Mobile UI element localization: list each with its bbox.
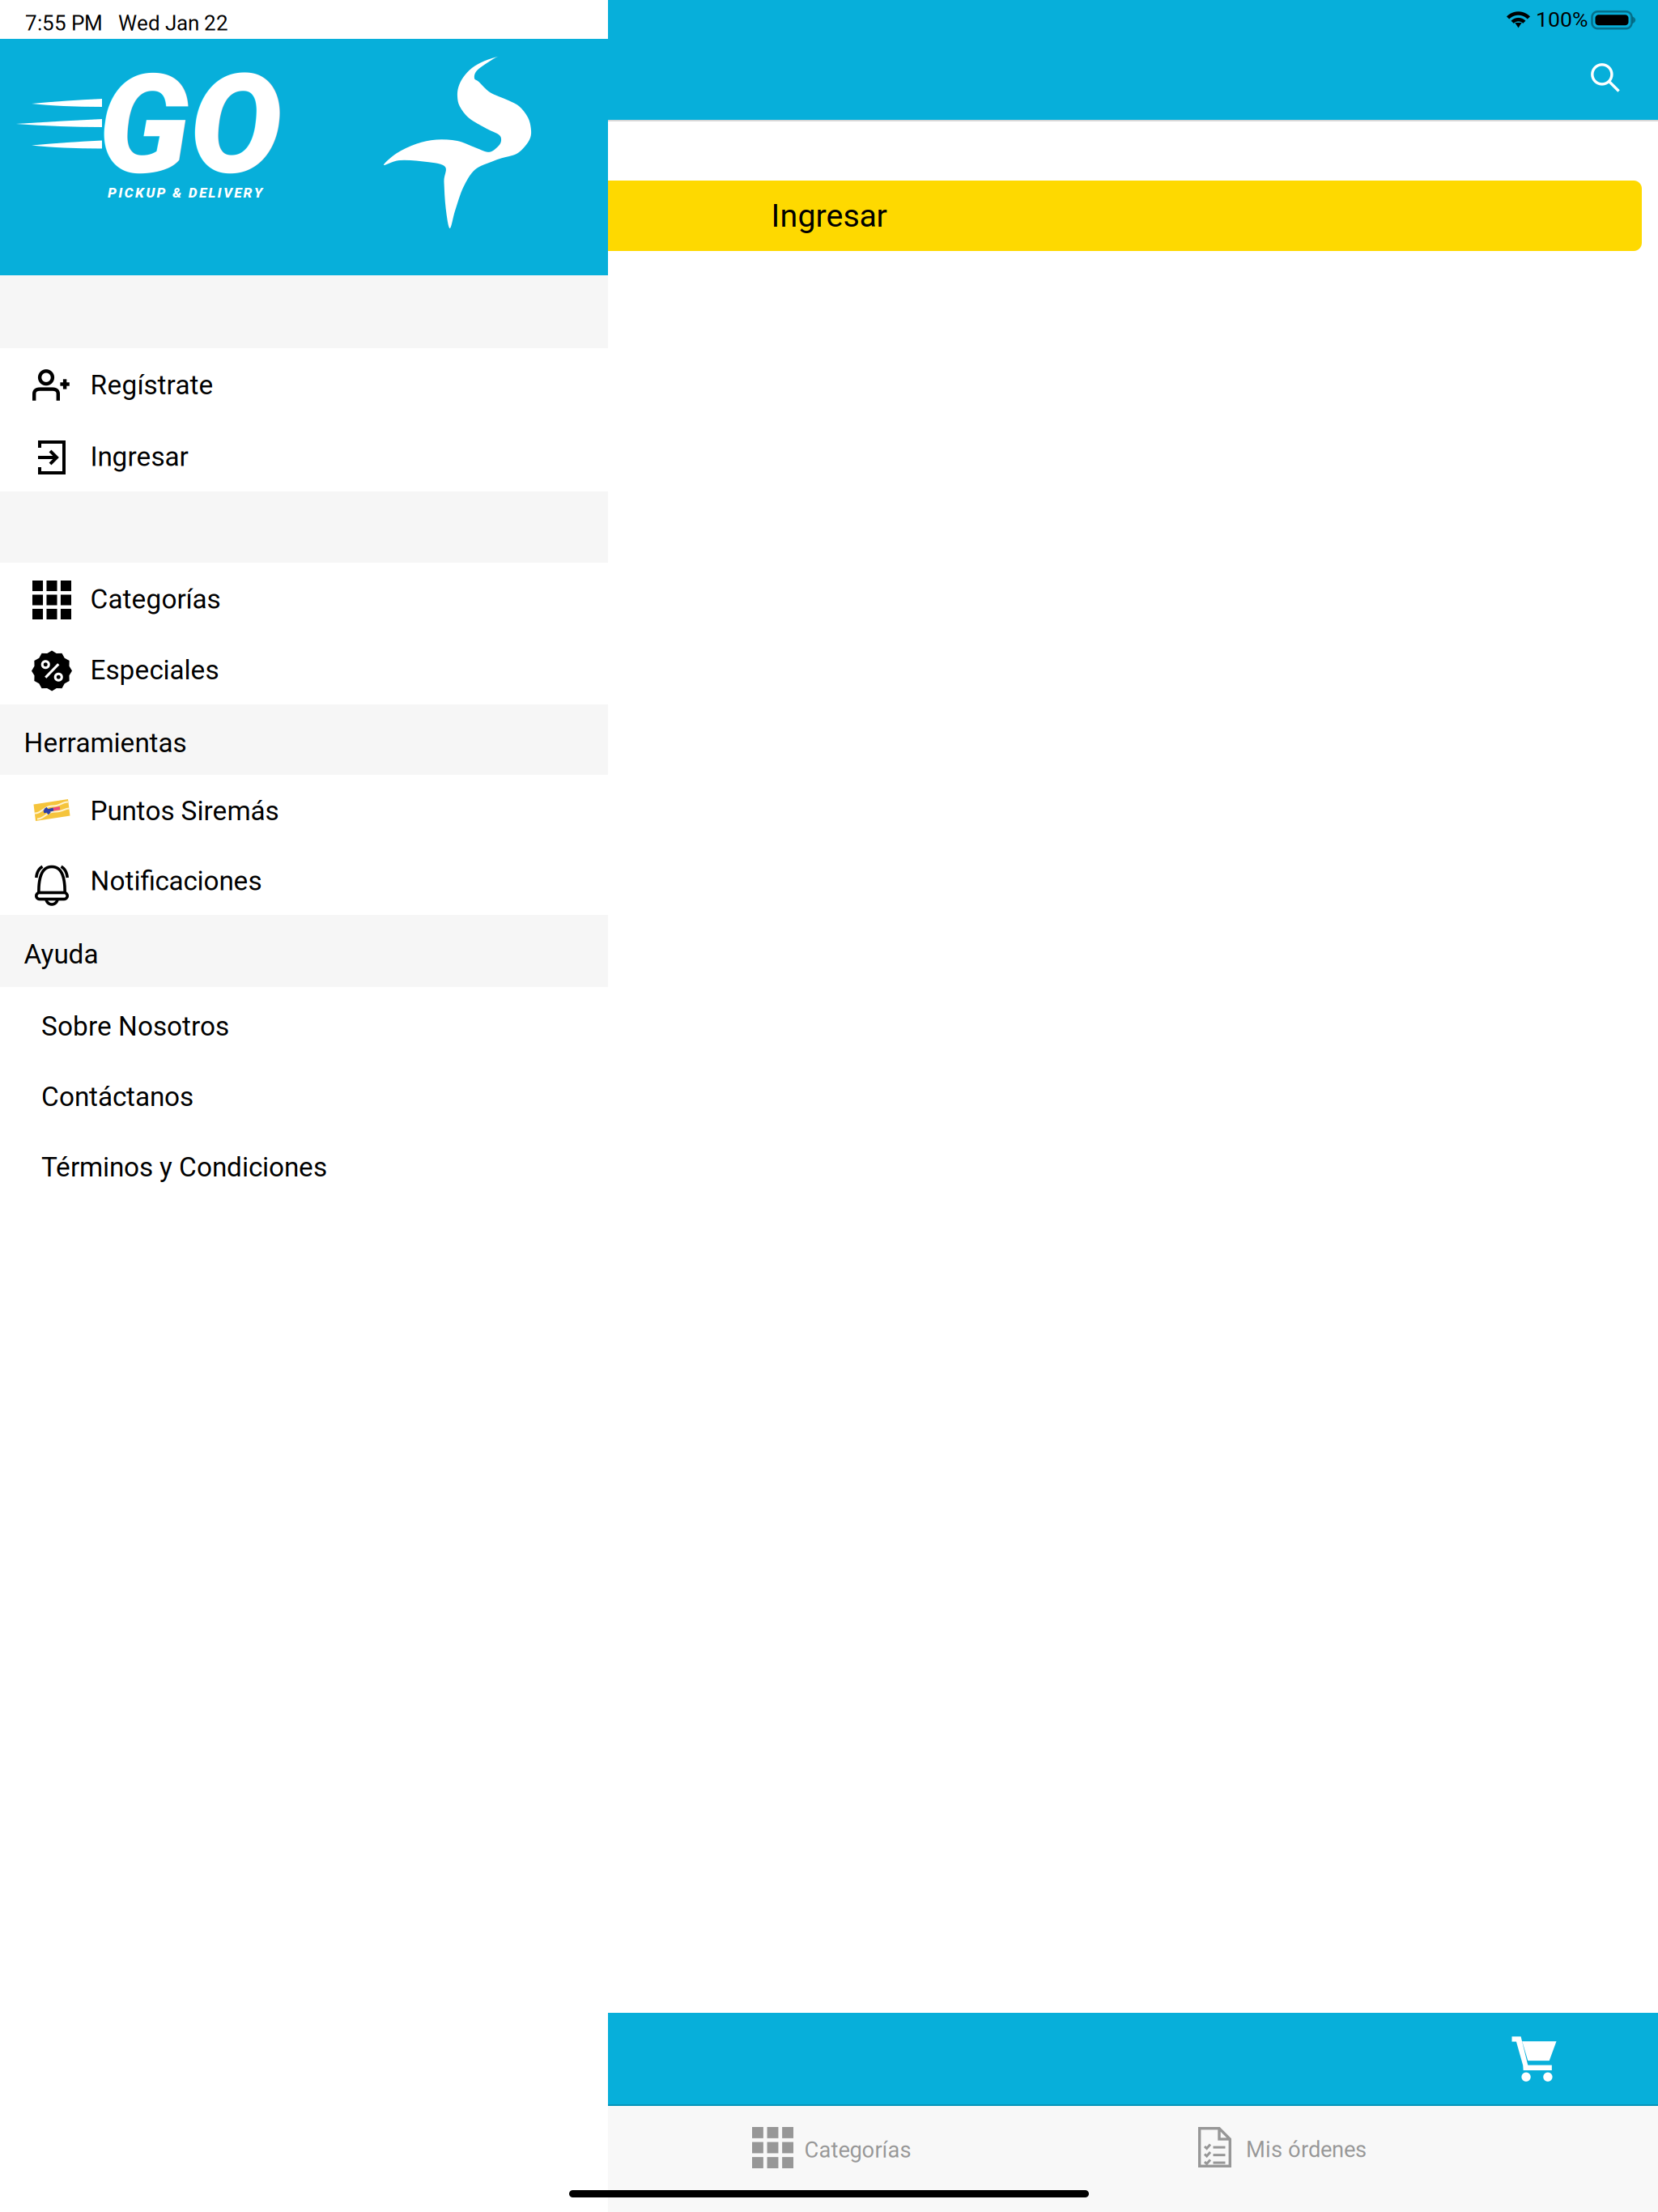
- staticText: PICKUP & DELIVERY: [108, 185, 263, 201]
- button[interactable]: Contáctanos: [0, 1057, 608, 1128]
- staticText: Puntos Siremás: [90, 795, 279, 827]
- staticText: Mis órdenes: [1246, 2137, 1367, 2163]
- staticText: Especiales: [90, 654, 219, 686]
- button[interactable]: Categorías: [608, 2106, 1133, 2212]
- button[interactable]: Ingresar: [0, 420, 608, 491]
- staticText: Términos y Condiciones: [41, 1151, 327, 1183]
- staticText: Wed Jan 22: [118, 11, 228, 35]
- staticText: Contáctanos: [41, 1081, 193, 1113]
- staticText: Categorías: [90, 583, 221, 615]
- staticText: Ayuda: [24, 938, 98, 970]
- staticText: 7:55 PM: [25, 11, 103, 35]
- button[interactable]: Categorías: [0, 563, 608, 634]
- staticText: Sobre Nosotros: [41, 1010, 229, 1042]
- staticText: Ingresar: [771, 197, 887, 234]
- button[interactable]: Especiales: [0, 634, 608, 704]
- button[interactable]: Puntos Siremás: [0, 775, 608, 845]
- staticText: Categorías: [804, 2137, 911, 2163]
- staticText: Herramientas: [24, 727, 187, 759]
- button[interactable]: Regístrate: [0, 348, 608, 420]
- button[interactable]: Carrito: [1494, 2018, 1575, 2099]
- button[interactable]: Notificaciones: [0, 845, 608, 915]
- staticText: 100%: [1536, 7, 1588, 32]
- button[interactable]: Buscar: [1569, 41, 1642, 114]
- button[interactable]: Sobre Nosotros: [0, 987, 608, 1057]
- staticText: GO: [98, 44, 282, 206]
- staticText: Regístrate: [90, 369, 213, 401]
- staticText: Notificaciones: [90, 865, 262, 897]
- button[interactable]: Mis órdenes: [1133, 2106, 1658, 2212]
- button[interactable]: Términos y Condiciones: [0, 1128, 608, 1198]
- staticText: Ingresar: [90, 441, 188, 473]
- button[interactable]: Ingresar: [16, 181, 1642, 251]
